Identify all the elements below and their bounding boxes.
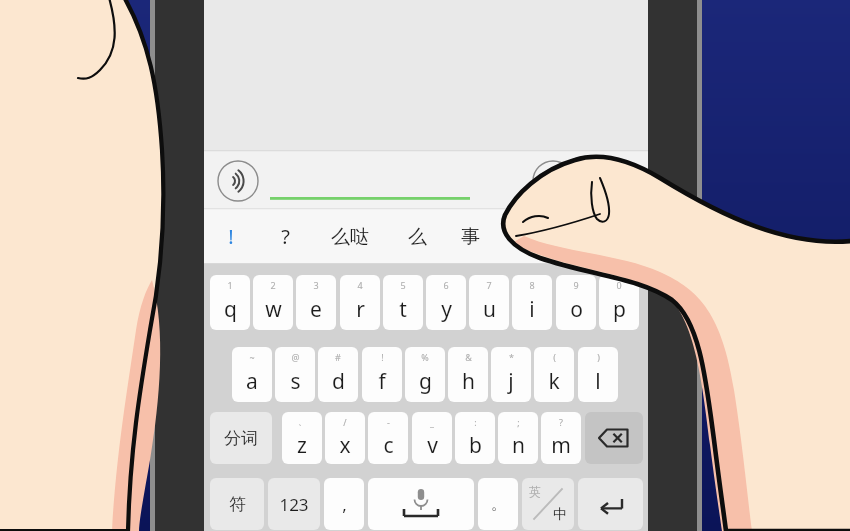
button[interactable]: / (325, 412, 365, 464)
staticText: , (342, 493, 347, 516)
button[interactable]: 么哒 (326, 209, 374, 264)
button[interactable]: 4 (340, 275, 380, 330)
button[interactable]: 7 (469, 275, 509, 330)
staticText: k (548, 367, 560, 396)
button[interactable]: ( (534, 347, 574, 402)
staticText: 符 (229, 494, 246, 515)
button[interactable]: # (318, 347, 358, 402)
staticText: r (356, 295, 365, 324)
staticText: g (419, 367, 432, 396)
button[interactable]: 、 (282, 412, 322, 464)
staticText: ) (597, 351, 600, 363)
staticText: 么哒 (331, 225, 369, 249)
button[interactable]: 事 (446, 209, 494, 264)
staticText: f (378, 367, 386, 396)
button[interactable]: - (368, 412, 408, 464)
button[interactable]: 0 (599, 275, 639, 330)
button[interactable]: 。 (478, 478, 518, 530)
staticText: z (297, 431, 307, 460)
button[interactable]: Space, voice input (368, 478, 474, 530)
button[interactable]: 么 (393, 209, 441, 264)
button[interactable]: 2 (253, 275, 293, 330)
staticText: 2 (270, 279, 276, 291)
staticText: 中 (553, 506, 567, 524)
staticText: c (383, 431, 394, 460)
staticText: ? (559, 416, 563, 428)
button[interactable]: ) (578, 347, 618, 402)
button[interactable]: 分词 (210, 412, 272, 464)
staticText: v (427, 431, 438, 460)
staticText: o (570, 295, 583, 324)
staticText: e (310, 295, 322, 324)
staticText: u (483, 295, 496, 324)
button[interactable]: _ (412, 412, 452, 464)
staticText: i (529, 295, 535, 324)
staticText: & (465, 351, 472, 363)
staticText: 6 (443, 279, 449, 291)
staticText: 英 (529, 484, 541, 499)
staticText: 9 (573, 279, 579, 291)
button[interactable]: ; (498, 412, 538, 464)
button[interactable]: 英 (522, 478, 574, 530)
button[interactable]: Backspace (585, 412, 643, 464)
staticText: 么 (408, 225, 427, 249)
staticText: n (512, 431, 525, 460)
button[interactable]: ? (541, 412, 581, 464)
staticText: ! (381, 351, 384, 363)
staticText: 0 (616, 279, 622, 291)
button[interactable]: , (324, 478, 364, 530)
staticText: 7 (486, 279, 492, 291)
staticText: 3 (313, 279, 319, 291)
staticText: x (339, 431, 351, 460)
button[interactable]: 符 (210, 478, 264, 530)
staticText: 5 (400, 279, 406, 291)
staticText: / (343, 416, 347, 428)
staticText: 123 (279, 493, 309, 516)
staticText: w (265, 295, 282, 324)
button[interactable]: ? (261, 209, 309, 264)
staticText: m (551, 431, 571, 460)
staticText: 、 (298, 416, 307, 427)
staticText: _ (430, 416, 434, 428)
staticText: 8 (529, 279, 535, 291)
button[interactable]: 6 (426, 275, 466, 330)
staticText: * (509, 351, 514, 363)
staticText: ~ (249, 351, 255, 363)
staticText: 1 (227, 279, 233, 291)
staticText: b (469, 431, 482, 460)
staticText: y (441, 295, 452, 324)
staticText: : (474, 416, 477, 428)
button[interactable]: Enter (578, 478, 643, 530)
button[interactable]: 123 (268, 478, 320, 530)
staticText: 。 (491, 495, 506, 514)
staticText: a (246, 367, 258, 396)
staticText: t (399, 295, 407, 324)
staticText: 4 (357, 279, 363, 291)
staticText: % (421, 351, 429, 363)
staticText: ( (553, 351, 556, 363)
button[interactable]: @ (275, 347, 315, 402)
button[interactable]: & (448, 347, 488, 402)
button[interactable]: 3 (296, 275, 336, 330)
staticText: d (332, 367, 345, 396)
button[interactable]: 1 (210, 275, 250, 330)
button[interactable]: ~ (232, 347, 272, 402)
button[interactable]: 8 (512, 275, 552, 330)
button[interactable]: : (455, 412, 495, 464)
button[interactable]: ! (207, 209, 255, 264)
button[interactable]: * (491, 347, 531, 402)
button[interactable]: % (405, 347, 445, 402)
staticText: @ (291, 351, 300, 363)
staticText: - (387, 416, 390, 428)
button[interactable]: 9 (556, 275, 596, 330)
staticText: ? (281, 223, 290, 250)
staticText: q (224, 295, 237, 324)
staticText: 分词 (224, 428, 258, 449)
button[interactable]: 5 (383, 275, 423, 330)
staticText: h (462, 367, 475, 396)
button[interactable]: ! (362, 347, 402, 402)
staticText: s (290, 367, 301, 396)
staticText: j (508, 367, 514, 396)
staticText: ! (228, 223, 234, 250)
staticText: 事 (461, 225, 480, 249)
